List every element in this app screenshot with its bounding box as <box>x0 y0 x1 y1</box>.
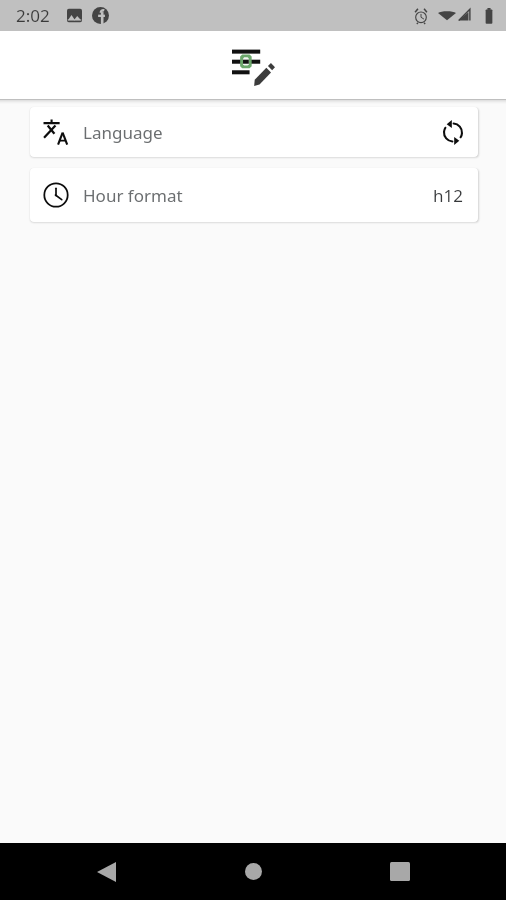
staticText: 2:02 <box>16 4 50 27</box>
button[interactable]: Hour format <box>30 168 478 222</box>
button[interactable]: Home <box>179 843 327 900</box>
staticText: Hour format <box>83 184 183 207</box>
button[interactable]: Recent apps <box>327 843 473 900</box>
staticText: Language <box>83 121 163 144</box>
staticText: h12 <box>433 184 463 207</box>
button[interactable]: Back <box>33 843 179 900</box>
button[interactable]: Language <box>30 107 478 157</box>
